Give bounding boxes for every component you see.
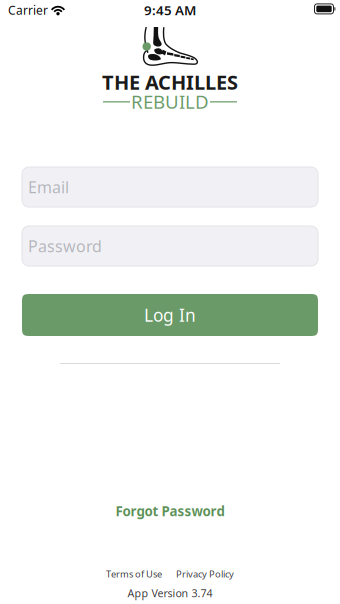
staticText: Forgot Password [115,502,224,520]
staticText: Privacy Policy [176,568,234,580]
staticText: App Version 3.74 [127,586,212,600]
staticText: Password [28,235,102,257]
button[interactable]: Email [22,167,318,207]
staticText: Log In [144,303,196,326]
staticText: 9:45 AM [144,1,196,19]
button[interactable]: Log In [22,294,318,336]
button[interactable]: Terms of Use [106,568,162,580]
button[interactable]: Password [22,226,318,266]
button[interactable]: Privacy Policy [176,568,234,580]
staticText: Terms of Use [106,568,162,580]
staticText: Email [28,176,69,198]
staticText: REBUILD [131,89,209,114]
staticText: Carrier [8,2,48,18]
staticText: THE ACHILLES [102,69,238,95]
button[interactable]: Forgot Password [0,500,340,522]
